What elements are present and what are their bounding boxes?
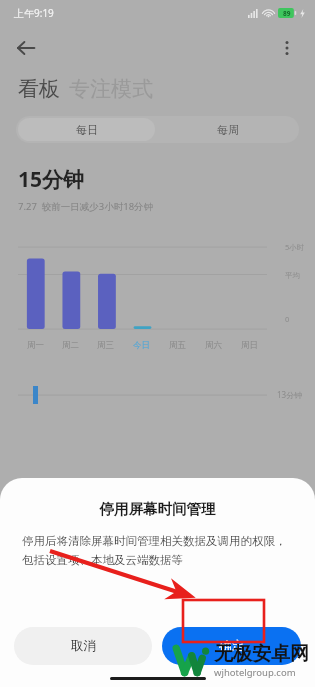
staticText: 5小时 — [285, 242, 305, 252]
staticText: 7.27 较前一日减少3小时18分钟 — [18, 200, 154, 213]
staticText: 上午9:19 — [14, 6, 54, 20]
staticText: 周六 — [205, 340, 222, 351]
staticText: 取消 — [71, 638, 96, 654]
staticText: 15分钟 — [18, 165, 85, 194]
staticText: 每日 — [76, 123, 98, 137]
staticText: 平均 — [285, 271, 300, 280]
staticText: 每周 — [217, 123, 239, 137]
button[interactable]: More options — [269, 30, 305, 66]
staticText: 无极安卓网 — [214, 642, 309, 666]
staticText: 0 — [285, 314, 290, 324]
staticText: 停用屏幕时间管理 — [0, 500, 315, 518]
staticText: 专注模式 — [69, 76, 153, 102]
button[interactable]: 每周 — [157, 116, 299, 143]
staticText: 89 — [283, 9, 291, 18]
staticText: 周五 — [169, 340, 186, 351]
button[interactable]: Back — [8, 30, 44, 66]
button[interactable]: 每日 — [18, 118, 155, 141]
button[interactable]: 取消 — [14, 627, 152, 665]
staticText: 周日 — [241, 340, 258, 351]
button[interactable]: 确定 — [162, 627, 301, 665]
staticText: wjhotelgroup.com — [214, 666, 296, 679]
staticText: 今日 — [133, 340, 150, 351]
staticText: 周三 — [97, 340, 114, 351]
staticText: 停用后将清除屏幕时间管理相关数据及调用的权限，包括设置项、本地及云端数据等 — [22, 534, 293, 568]
staticText: 看板 — [18, 76, 60, 102]
staticText: 周一 — [27, 340, 44, 351]
staticText: 确定 — [219, 638, 244, 654]
staticText: 13分钟 — [277, 389, 303, 400]
staticText: 周二 — [62, 340, 79, 351]
